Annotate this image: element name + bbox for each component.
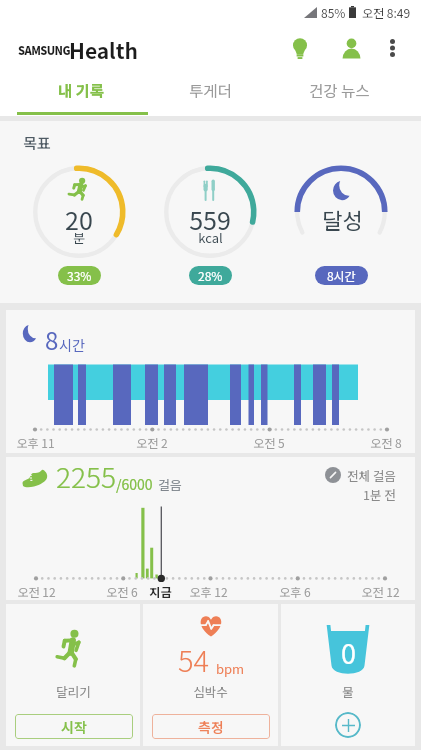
staticText: 2255 (56, 456, 116, 497)
staticText: 전체 걸음 (347, 466, 396, 484)
button[interactable] (6, 604, 140, 746)
button[interactable] (143, 604, 278, 746)
staticText: 0 (341, 633, 356, 672)
staticText: 20 (65, 201, 93, 237)
staticText: 오전 12 (17, 583, 56, 600)
button[interactable] (6, 310, 415, 453)
staticText: 오후 6 (279, 583, 311, 600)
staticText: 오전 2 (136, 434, 168, 451)
staticText: 오후 11 (16, 434, 55, 451)
button[interactable]: 내 기록 (17, 68, 146, 116)
staticText: /6000 (116, 474, 153, 494)
staticText: 시간 (59, 335, 85, 355)
button[interactable]: More options (372, 28, 412, 68)
button[interactable]: 시작 (15, 714, 133, 739)
button[interactable] (281, 604, 415, 746)
staticText: 오전 12 (361, 583, 400, 600)
staticText: 지금 (149, 583, 172, 600)
staticText: 분 (73, 228, 85, 247)
staticText: SAMSUNG (18, 42, 70, 58)
staticText: 오전 6 (106, 583, 138, 600)
staticText: 1분 전 (363, 485, 396, 503)
button[interactable]: 측정 (152, 714, 270, 739)
staticText: 목표 (23, 132, 51, 154)
button[interactable]: Add water (335, 712, 361, 738)
staticText: 물 (342, 682, 354, 700)
staticText: Health (69, 35, 138, 65)
staticText: 오전 5 (253, 434, 285, 451)
button[interactable]: Profile (329, 26, 373, 70)
staticText: bpm (216, 659, 245, 678)
staticText: 시작 (61, 717, 87, 737)
button[interactable]: 목표 (0, 121, 421, 303)
staticText: 심박수 (193, 682, 228, 700)
staticText: 오후 12 (189, 583, 228, 600)
staticText: 오전 8 (370, 434, 402, 451)
staticText: 33% (67, 267, 92, 284)
staticText: 28% (198, 267, 223, 284)
staticText: 559 (189, 201, 231, 237)
staticText: 8 (45, 322, 59, 357)
staticText: 오전 8:49 (362, 4, 411, 21)
staticText: 달리기 (56, 682, 91, 700)
button[interactable]: Tips (278, 26, 322, 70)
staticText: 건강 뉴스 (309, 79, 370, 101)
staticText: 걸음 (158, 475, 182, 494)
staticText: 내 기록 (58, 79, 105, 101)
button[interactable]: 투게더 (146, 68, 275, 116)
button[interactable]: 건강 뉴스 (275, 68, 404, 116)
staticText: 8시간 (327, 267, 356, 284)
staticText: 투게더 (189, 79, 232, 101)
staticText: 85% (321, 4, 346, 21)
staticText: 측정 (198, 717, 224, 737)
staticText: kcal (198, 228, 223, 247)
staticText: 달성 (322, 203, 363, 235)
button[interactable] (6, 457, 415, 600)
staticText: 54 (178, 638, 210, 680)
